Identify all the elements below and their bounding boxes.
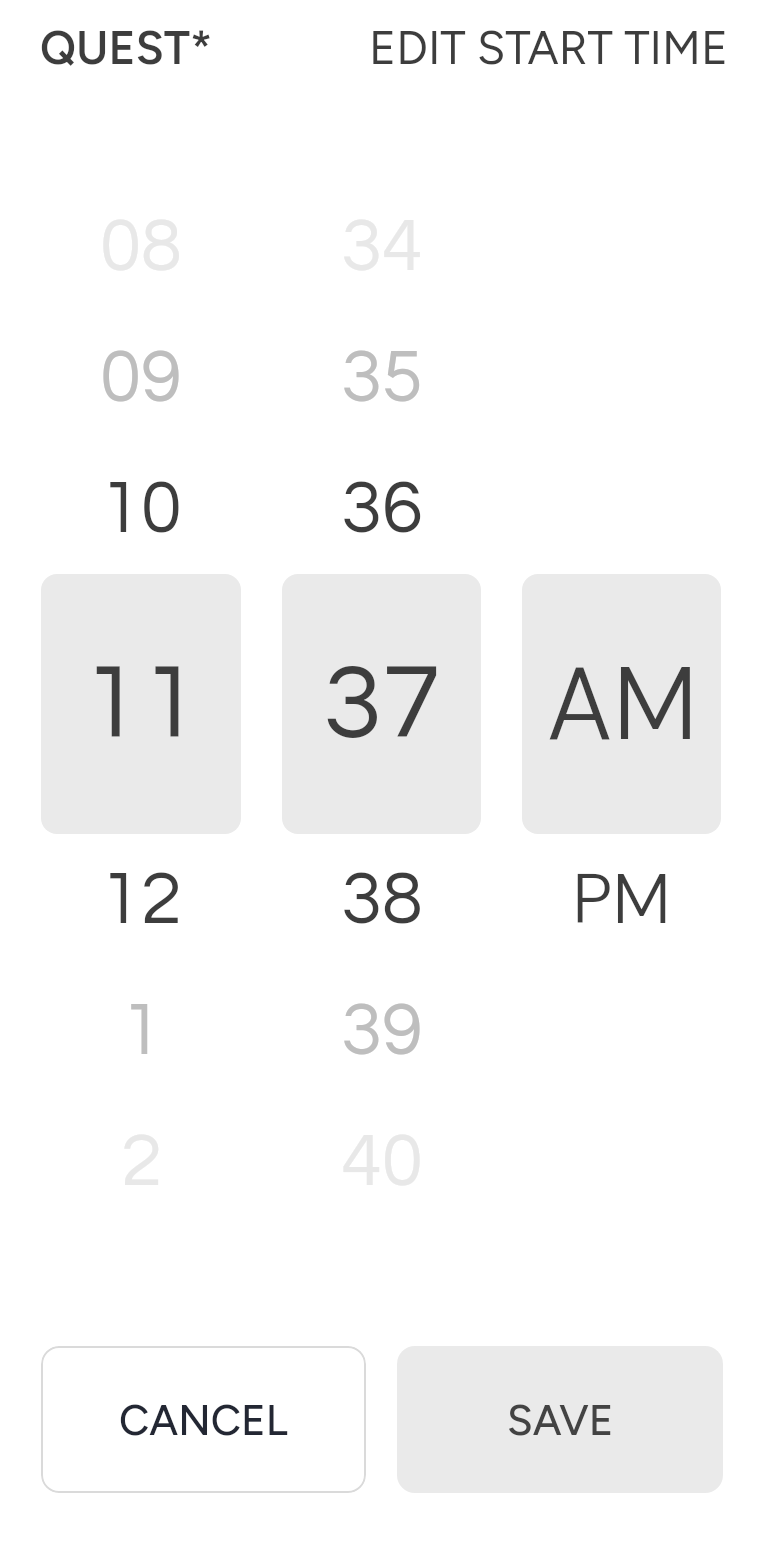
button[interactable]: 2 <box>41 1096 241 1227</box>
staticText: 35 <box>341 340 423 416</box>
button[interactable]: 40 <box>282 1096 481 1227</box>
staticText: 40 <box>341 1124 423 1200</box>
staticText: 38 <box>341 862 423 938</box>
button[interactable]: 35 <box>282 312 481 443</box>
button[interactable]: 12 <box>41 834 241 965</box>
staticText: 2 <box>121 1124 162 1200</box>
button[interactable]: 38 <box>282 834 481 965</box>
staticText: 1 <box>121 993 162 1069</box>
staticText: 09 <box>100 340 182 416</box>
staticText: AM <box>546 638 698 771</box>
button[interactable]: 39 <box>282 965 481 1096</box>
staticText: QUEST* <box>40 20 213 75</box>
staticText: 34 <box>341 209 423 285</box>
staticText: SAVE <box>507 1395 614 1445</box>
staticText: 11 <box>82 649 200 759</box>
button[interactable]: 11 <box>41 574 241 834</box>
staticText: 39 <box>341 993 423 1069</box>
button[interactable]: PM <box>522 834 721 965</box>
button[interactable]: EDIT START TIME <box>369 20 729 75</box>
staticText: 10 <box>100 471 182 547</box>
button[interactable]: CANCEL <box>41 1346 366 1493</box>
staticText: 08 <box>100 209 182 285</box>
button[interactable]: 34 <box>282 181 481 312</box>
staticText: EDIT START TIME <box>369 20 729 75</box>
staticText: 37 <box>323 649 441 759</box>
button[interactable]: AM <box>522 574 721 834</box>
staticText: 36 <box>341 471 423 547</box>
staticText: CANCEL <box>119 1395 288 1445</box>
button[interactable]: 09 <box>41 312 241 443</box>
button[interactable]: 08 <box>41 181 241 312</box>
button[interactable]: 37 <box>282 574 481 834</box>
staticText: 12 <box>100 862 182 938</box>
staticText: PM <box>572 854 671 945</box>
button[interactable]: 1 <box>41 965 241 1096</box>
button[interactable]: 10 <box>41 443 241 574</box>
button[interactable]: QUEST* <box>40 20 213 75</box>
button[interactable]: 36 <box>282 443 481 574</box>
button[interactable]: SAVE <box>397 1346 723 1493</box>
